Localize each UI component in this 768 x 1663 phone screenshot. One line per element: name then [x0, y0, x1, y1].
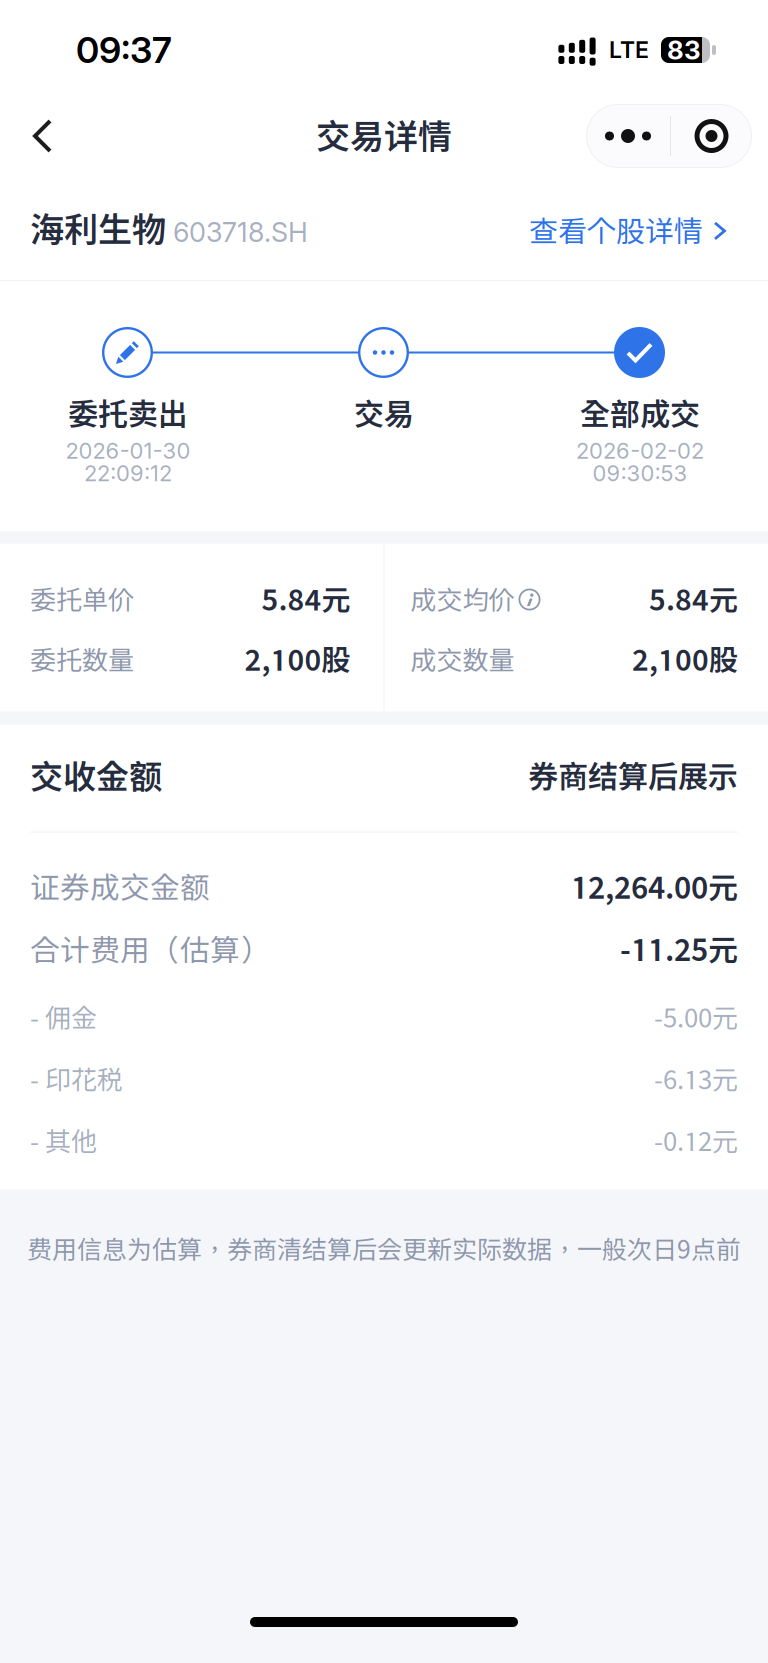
staticText: 09:37 — [76, 28, 172, 72]
staticText: 2026-02-02 — [576, 437, 704, 464]
staticText: -6.13元 — [654, 1064, 738, 1095]
staticText: -5.00元 — [654, 1002, 738, 1033]
staticText: - 其他 — [30, 1126, 97, 1156]
staticText: 交收金额 — [30, 757, 162, 795]
staticText: - 印花税 — [30, 1064, 123, 1095]
staticText: 券商结算后展示 — [528, 758, 738, 794]
staticText: 12,264.00元 — [571, 870, 738, 905]
button[interactable]: Back — [0, 104, 77, 168]
button[interactable]: Close mini program — [671, 104, 752, 168]
staticText: 委托卖出 — [68, 396, 188, 431]
staticText: 查看个股详情 — [529, 214, 703, 248]
staticText: 2,100股 — [244, 643, 350, 677]
staticText: 费用信息为估算，券商清结算后会更新实际数据，一般次日9点前 — [27, 1234, 741, 1264]
staticText: 5.84元 — [649, 582, 738, 617]
staticText: 证券成交金额 — [30, 870, 210, 905]
staticText: -0.12元 — [654, 1126, 738, 1156]
staticText: LTE — [609, 36, 649, 64]
staticText: 海利生物 — [30, 209, 166, 249]
staticText: 09:30:53 — [592, 460, 687, 487]
staticText: 83 — [667, 34, 701, 66]
staticText: 全部成交 — [580, 396, 700, 431]
staticText: 5.84元 — [261, 582, 350, 617]
staticText: 交易 — [354, 396, 414, 431]
staticText: 成交数量 — [410, 644, 514, 675]
staticText: 交易详情 — [316, 116, 452, 156]
button[interactable]: 查看个股详情 — [529, 214, 727, 248]
staticText: 合计费用（估算） — [30, 932, 270, 967]
staticText: 603718.SH — [173, 216, 308, 248]
staticText: 2026-01-30 — [65, 437, 190, 464]
staticText: 委托数量 — [30, 644, 134, 675]
staticText: 成交均价 — [410, 584, 514, 615]
staticText: -11.25元 — [620, 932, 738, 967]
staticText: 2,100股 — [632, 643, 738, 677]
button[interactable]: More options — [586, 104, 670, 168]
staticText: 委托单价 — [30, 584, 134, 615]
staticText: - 佣金 — [30, 1002, 97, 1033]
staticText: 22:09:12 — [84, 460, 172, 487]
